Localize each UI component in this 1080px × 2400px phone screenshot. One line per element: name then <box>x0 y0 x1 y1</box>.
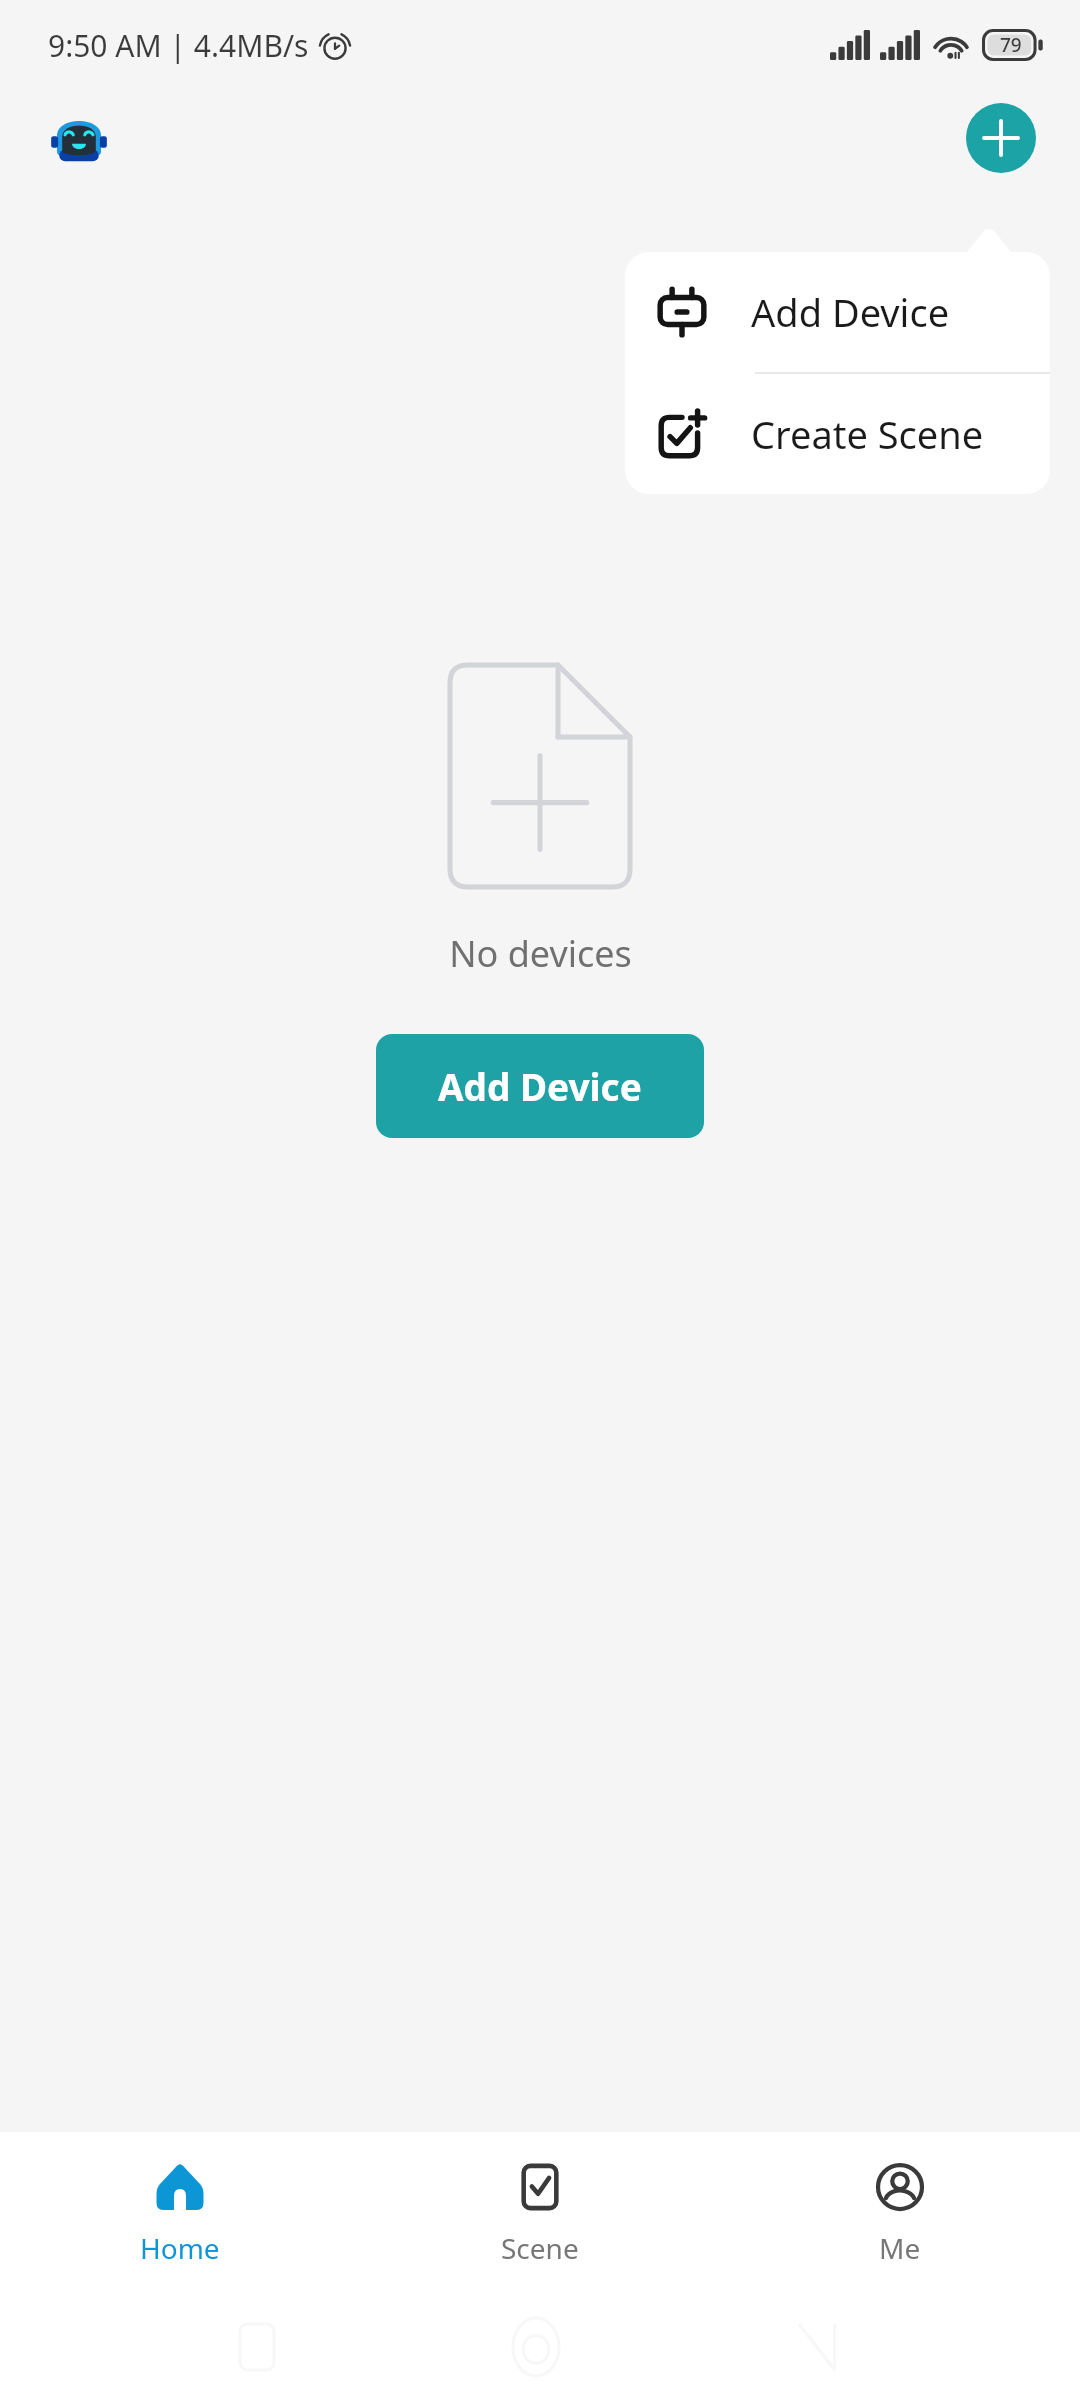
staticText: 9:50 AM | 4.4MB/s <box>48 25 309 66</box>
button[interactable]: Add Device <box>376 1034 704 1138</box>
button[interactable]: Add <box>966 103 1036 173</box>
staticText: Home <box>140 2229 220 2267</box>
button[interactable]: Create Scene <box>625 374 1050 494</box>
button[interactable]: Add Device <box>625 252 1050 372</box>
staticText: No devices <box>449 929 632 978</box>
button[interactable]: Profile avatar <box>50 109 108 167</box>
staticText: Scene <box>501 2229 579 2267</box>
button[interactable]: Home <box>0 2132 360 2294</box>
staticText: Me <box>879 2229 921 2267</box>
button[interactable]: Me <box>720 2132 1080 2294</box>
staticText: Add Device <box>751 286 950 338</box>
staticText: 79 <box>1000 32 1022 58</box>
button[interactable]: Scene <box>360 2132 720 2294</box>
staticText: Add Device <box>438 1061 642 1111</box>
staticText: Create Scene <box>751 408 984 460</box>
